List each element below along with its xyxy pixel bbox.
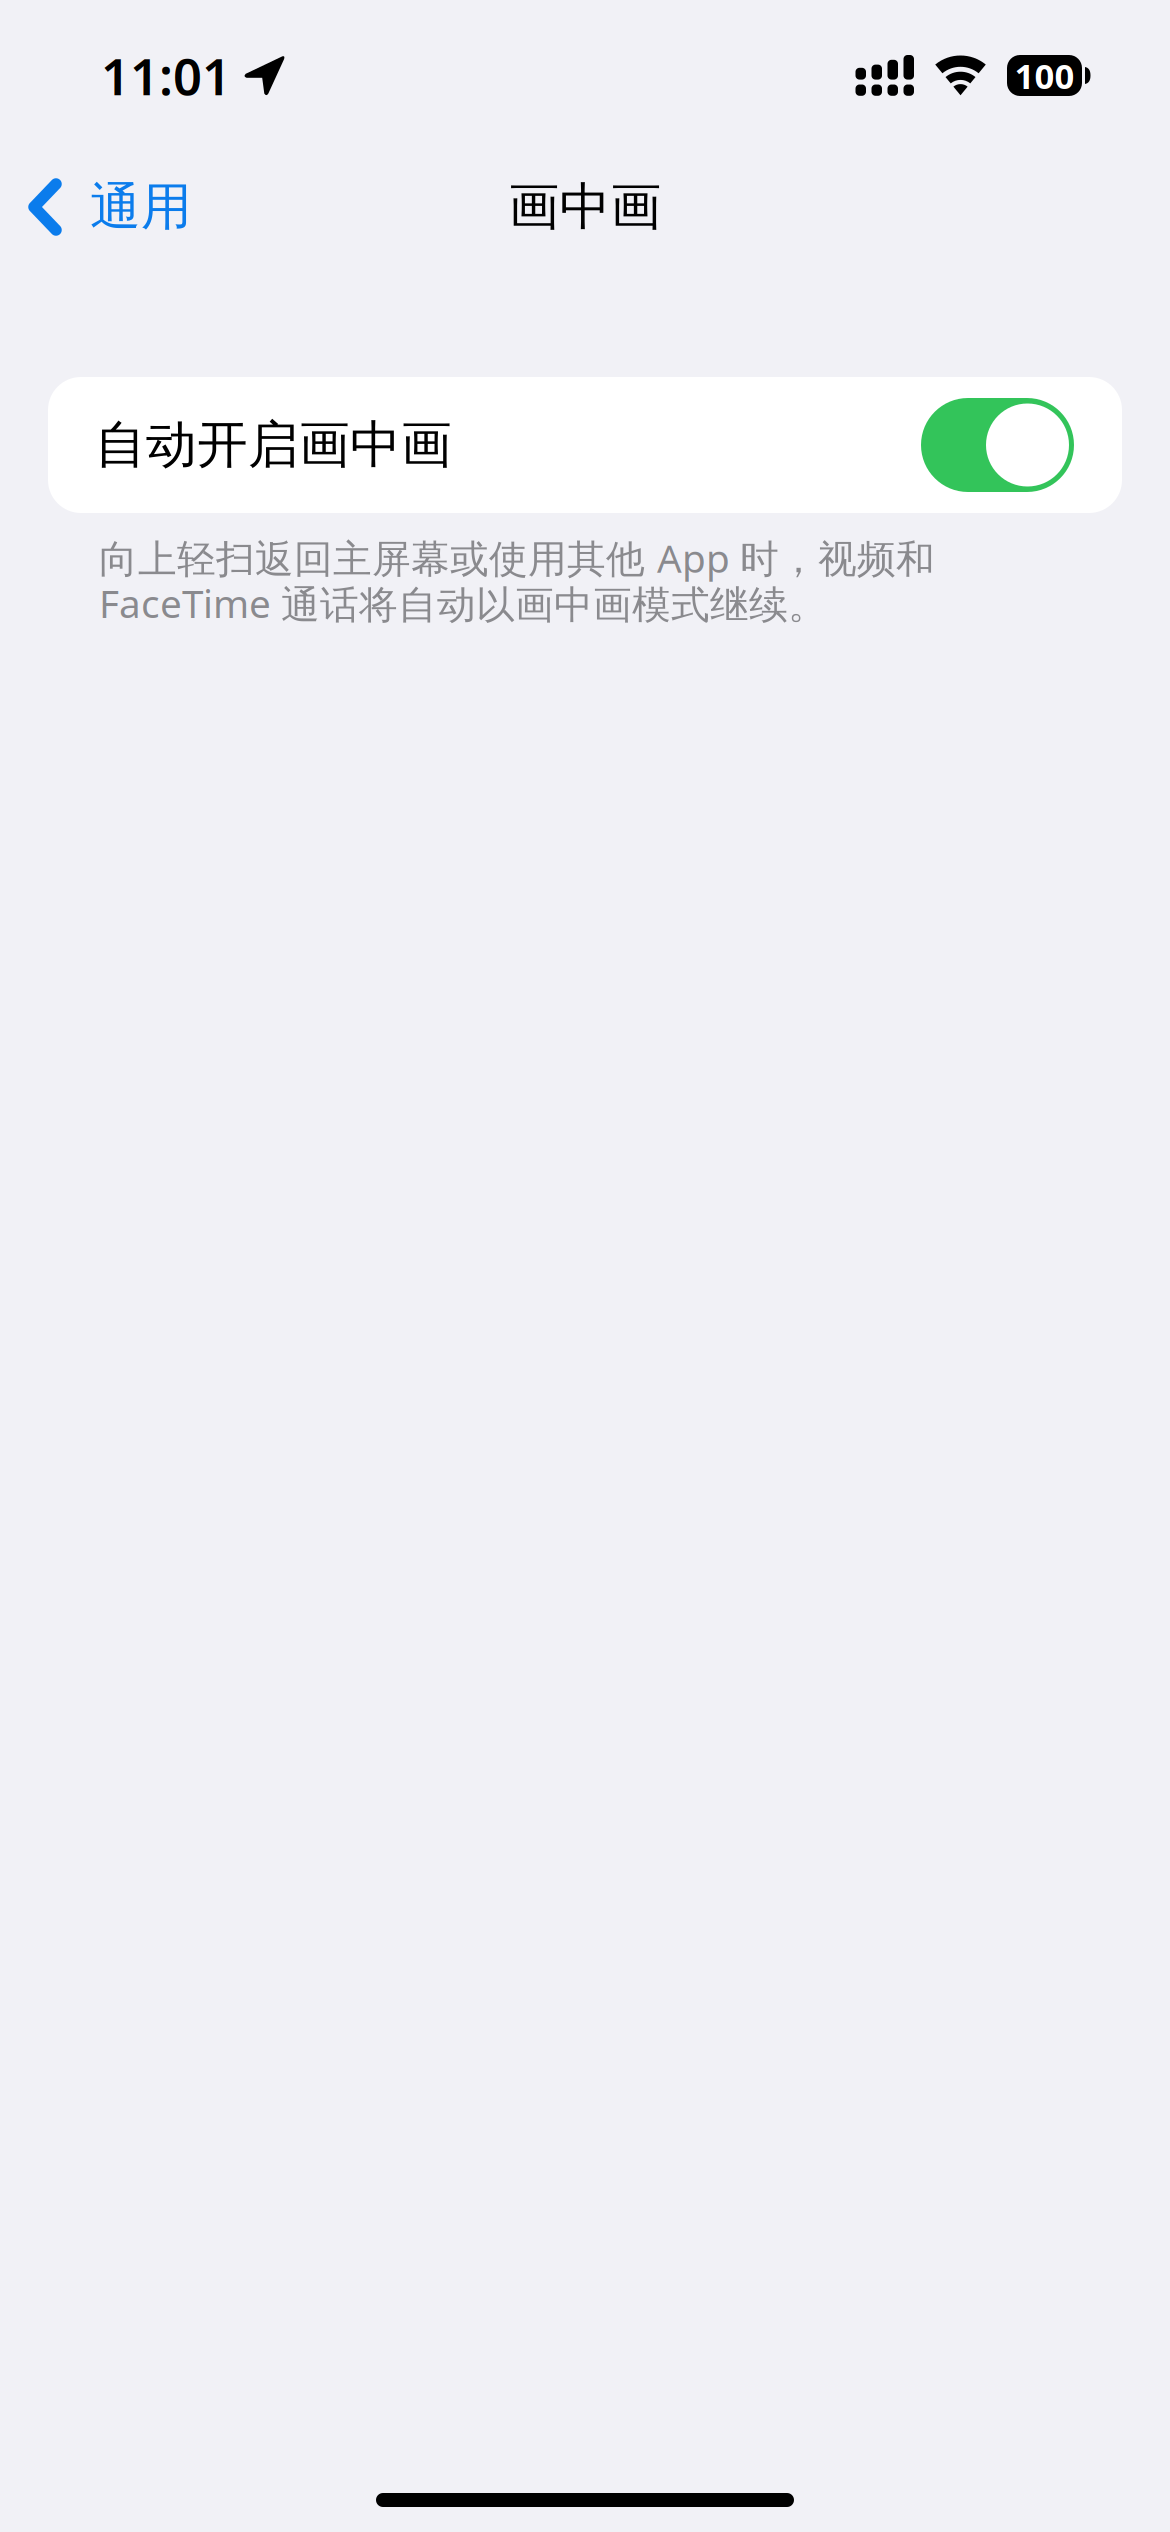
button[interactable]: 自动开启画中画: [48, 377, 1122, 513]
staticText: 向上轻扫返回主屏幕或使用其他 App 时，视频和: [99, 532, 935, 583]
staticText: 100: [1014, 52, 1074, 98]
staticText: 画中画: [508, 176, 661, 238]
staticText: 11:01: [101, 42, 231, 109]
button[interactable]: 通用: [0, 156, 216, 258]
staticText: 通用: [90, 176, 192, 238]
staticText: FaceTime 通话将自动以画中画模式继续。: [99, 577, 827, 629]
staticText: 自动开启画中画: [95, 414, 452, 476]
